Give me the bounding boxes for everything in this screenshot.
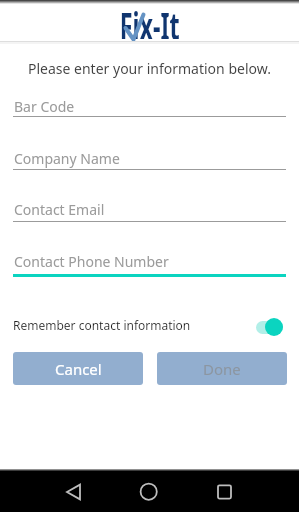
staticText: Please enter your information below. bbox=[28, 59, 271, 78]
staticText: Done bbox=[203, 359, 241, 379]
staticText: Remember contact information bbox=[13, 317, 191, 333]
staticText: Company Name bbox=[14, 149, 120, 168]
button[interactable]: Company Name bbox=[13, 149, 286, 173]
staticText: Fix-It bbox=[120, 0, 180, 39]
button[interactable] bbox=[53, 471, 94, 512]
button[interactable]: Contact Email bbox=[13, 200, 286, 225]
staticText: Contact Email bbox=[14, 200, 105, 219]
staticText: Contact Phone Number bbox=[14, 252, 169, 271]
button[interactable]: Bar Code bbox=[13, 97, 286, 120]
button[interactable]: Contact Phone Number bbox=[13, 252, 286, 278]
button[interactable]: Cancel bbox=[13, 352, 143, 385]
button[interactable] bbox=[204, 471, 245, 512]
button[interactable] bbox=[128, 471, 169, 512]
button[interactable] bbox=[252, 316, 286, 338]
staticText: Bar Code bbox=[14, 97, 75, 116]
staticText: Cancel bbox=[55, 359, 102, 379]
button[interactable]: Done bbox=[157, 352, 287, 385]
